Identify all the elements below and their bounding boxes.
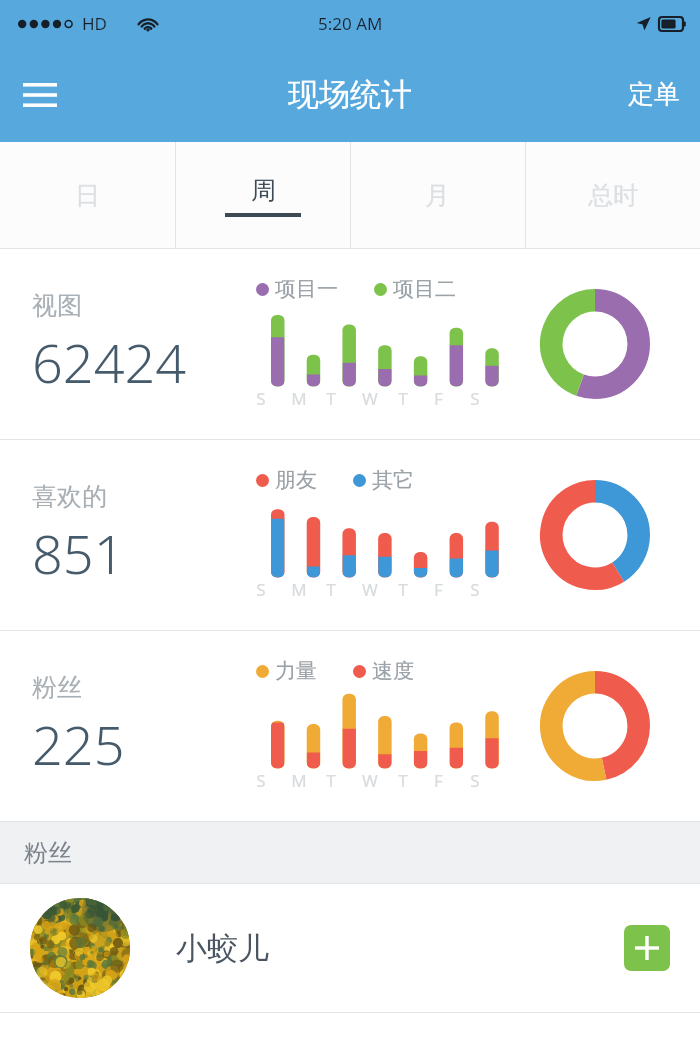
staticText: HD	[82, 12, 108, 35]
staticText: 朋友	[275, 467, 317, 493]
staticText: 项目一	[275, 276, 338, 302]
staticText: F	[434, 769, 443, 792]
button[interactable]: 月	[350, 142, 525, 249]
staticText: S	[256, 387, 266, 410]
staticText: T	[326, 387, 336, 410]
button[interactable]: 周	[175, 142, 350, 249]
button[interactable]: 总时	[525, 142, 700, 249]
button[interactable]: Add follower	[624, 925, 670, 971]
staticText: 喜欢的	[32, 481, 107, 512]
staticText: 粉丝	[32, 672, 82, 703]
staticText: T	[326, 769, 336, 792]
staticText: 5:20 AM	[318, 12, 383, 35]
staticText: 总时	[588, 180, 638, 211]
staticText: W	[362, 387, 378, 410]
staticText: T	[398, 578, 408, 601]
button[interactable]: 视图	[0, 249, 700, 439]
staticText: T	[326, 578, 336, 601]
staticText: W	[362, 578, 378, 601]
staticText: W	[362, 769, 378, 792]
staticText: S	[470, 769, 480, 792]
staticText: 力量	[275, 658, 317, 684]
staticText: M	[291, 578, 307, 601]
staticText: S	[470, 578, 480, 601]
staticText: F	[434, 578, 443, 601]
staticText: 62424	[32, 325, 187, 399]
staticText: 日	[75, 180, 100, 211]
staticText: S	[470, 387, 480, 410]
staticText: 851	[32, 516, 125, 590]
staticText: 定单	[628, 78, 680, 111]
button[interactable]: Menu	[12, 67, 68, 123]
button[interactable]: 小蛟儿	[0, 884, 700, 1012]
staticText: T	[398, 769, 408, 792]
button[interactable]: 定单	[608, 66, 700, 123]
staticText: 月	[425, 180, 450, 211]
staticText: T	[398, 387, 408, 410]
staticText: M	[291, 387, 307, 410]
staticText: 速度	[372, 658, 414, 684]
button[interactable]: 日	[0, 142, 175, 249]
staticText: 项目二	[393, 276, 456, 302]
staticText: 小蛟儿	[176, 929, 269, 968]
button[interactable]: 粉丝	[0, 631, 700, 821]
staticText: 现场统计	[288, 75, 412, 114]
staticText: M	[291, 769, 307, 792]
staticText: 其它	[372, 467, 414, 493]
staticText: S	[256, 769, 266, 792]
staticText: 225	[32, 707, 125, 781]
staticText: 周	[251, 175, 276, 206]
staticText: 粉丝	[24, 838, 72, 868]
staticText: 视图	[32, 290, 82, 321]
staticText: F	[434, 387, 443, 410]
button[interactable]: 喜欢的	[0, 440, 700, 630]
staticText: S	[256, 578, 266, 601]
